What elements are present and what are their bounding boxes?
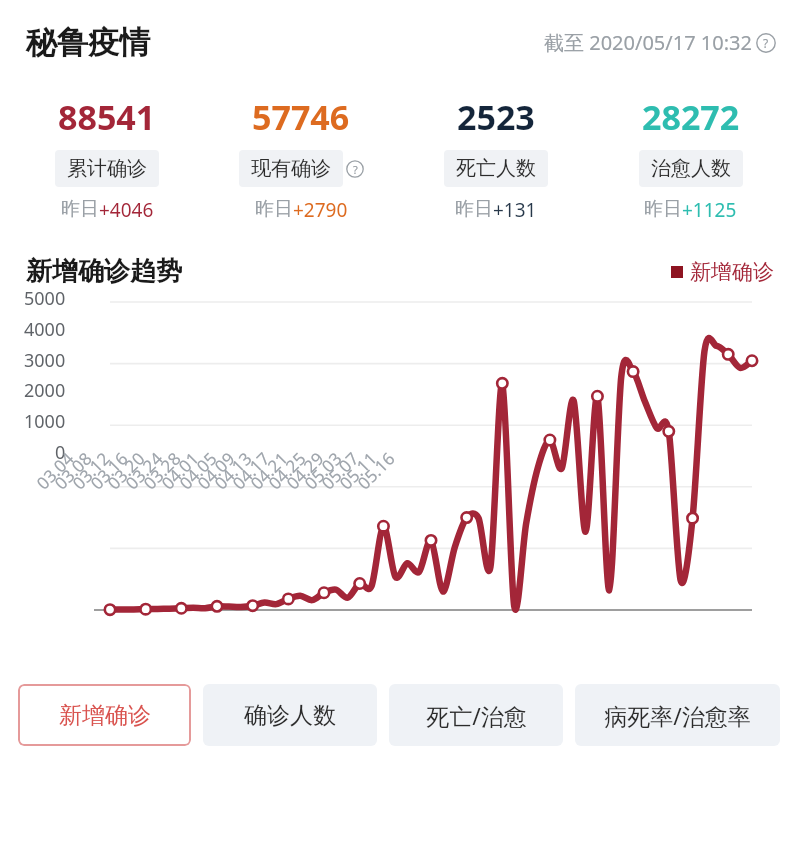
staticText: 03.16 (85, 447, 133, 494)
staticText: 新增确诊 (690, 259, 774, 285)
staticText: 03.20 (102, 447, 150, 494)
button[interactable]: 新增确诊 (18, 684, 191, 746)
staticText: 05.03 (299, 447, 347, 494)
staticText: 04.13 (209, 447, 257, 494)
staticText: 04.09 (192, 447, 240, 494)
staticText: 03.12 (67, 447, 115, 494)
staticText: 死亡/治愈 (426, 700, 527, 731)
staticText: 治愈人数 (651, 156, 731, 181)
button[interactable]: 新增确诊 (671, 259, 774, 285)
staticText: 03.28 (138, 447, 186, 494)
staticText: 88541 (58, 94, 156, 140)
button[interactable]: 死亡/治愈 (389, 684, 563, 746)
staticText: 03.24 (120, 447, 168, 494)
staticText: 4000 (24, 317, 66, 342)
staticText: 2523 (457, 94, 535, 140)
staticText: 04.01 (156, 447, 204, 494)
staticText: 04.21 (245, 447, 293, 494)
staticText: 截至 2020/05/17 10:32 (544, 29, 752, 56)
button[interactable]: 说明 (756, 33, 776, 53)
staticText: 确诊人数 (244, 701, 336, 730)
staticText: 03.04 (31, 447, 79, 494)
staticText: 04.05 (174, 447, 222, 494)
staticText: 05.11 (334, 447, 382, 494)
staticText: ? (763, 35, 769, 51)
staticText: 昨日 (455, 197, 493, 221)
staticText: 昨日 (61, 197, 99, 221)
button[interactable]: 88541 (10, 90, 204, 227)
staticText: 04.17 (227, 447, 275, 494)
staticText: 现有确诊 (251, 156, 331, 181)
staticText: +131 (493, 197, 537, 223)
button[interactable]: 确诊人数 (203, 684, 377, 746)
staticText: 03.08 (49, 447, 97, 494)
staticText: +1125 (682, 197, 737, 223)
staticText: +2790 (293, 197, 348, 223)
button[interactable]: 28272 (593, 90, 788, 227)
staticText: 2000 (24, 378, 66, 403)
button[interactable]: 2523 (398, 90, 593, 227)
staticText: 5000 (24, 286, 66, 311)
staticText: 05.07 (316, 447, 364, 494)
staticText: 28272 (642, 94, 740, 140)
staticText: 05.16 (352, 447, 400, 494)
staticText: 1000 (24, 409, 66, 434)
staticText: 57746 (252, 94, 350, 140)
staticText: 新增确诊趋势 (26, 255, 182, 288)
staticText: 3000 (24, 348, 66, 373)
staticText: 04.29 (281, 447, 329, 494)
staticText: 病死率/治愈率 (604, 700, 751, 731)
staticText: 0 (55, 440, 66, 465)
staticText: ? (353, 162, 358, 177)
staticText: 04.25 (263, 447, 311, 494)
staticText: 秘鲁疫情 (26, 23, 150, 62)
staticText: 新增确诊 (59, 701, 151, 730)
staticText: 昨日 (644, 197, 682, 221)
staticText: +4046 (99, 197, 154, 223)
staticText: 昨日 (255, 197, 293, 221)
button[interactable]: 57746 (204, 90, 398, 227)
staticText: 死亡人数 (456, 156, 536, 181)
button[interactable]: 病死率/治愈率 (575, 684, 780, 746)
staticText: 累计确诊 (67, 156, 147, 181)
